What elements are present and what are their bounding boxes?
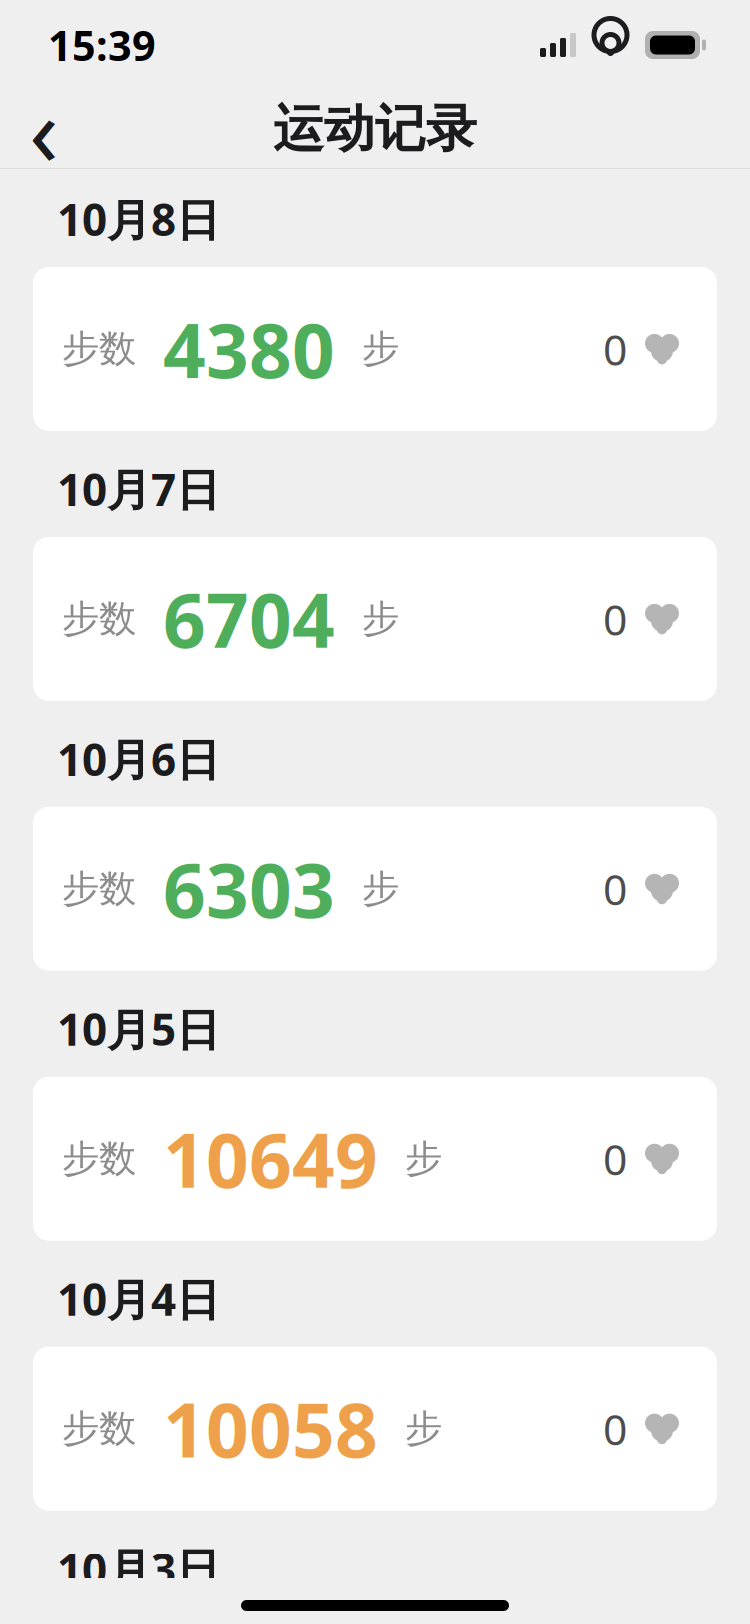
button[interactable]: 步数 (33, 1077, 717, 1241)
button[interactable]: 步数 (33, 807, 717, 971)
staticText: 0 (603, 1130, 627, 1187)
staticText: 运动记录 (273, 97, 477, 161)
staticText: 0 (603, 321, 627, 377)
staticText: 10058 (163, 1378, 378, 1479)
staticText: 步 (362, 326, 399, 372)
staticText: 4380 (163, 298, 335, 400)
button[interactable]: 返回 (4, 90, 84, 168)
staticText: 步数 (62, 866, 136, 912)
button[interactable]: 步数 (33, 267, 717, 431)
staticText: 10月4日 (57, 1269, 220, 1329)
staticText: 0 (603, 860, 627, 917)
button[interactable]: 步数 (33, 537, 717, 701)
staticText: 10月6日 (57, 729, 220, 789)
staticText: 步 (362, 866, 399, 912)
staticText: 步 (362, 596, 399, 642)
staticText: 0 (603, 1400, 627, 1457)
staticText: 步 (405, 1136, 442, 1182)
staticText: 步数 (62, 1136, 136, 1182)
staticText: 步 (405, 1406, 442, 1452)
staticText: 15:39 (48, 17, 156, 73)
staticText: 6704 (163, 568, 335, 670)
staticText: 6303 (163, 838, 335, 940)
button[interactable]: 步数 (33, 1347, 717, 1511)
staticText: 10月3日 (57, 1539, 220, 1598)
staticText: 0 (603, 590, 627, 647)
staticText: 10月5日 (57, 999, 220, 1059)
staticText: 步数 (62, 1406, 136, 1452)
staticText: 10月7日 (57, 459, 220, 519)
staticText: 10649 (163, 1108, 378, 1210)
staticText: 步数 (62, 596, 136, 642)
staticText: 10月8日 (57, 189, 220, 249)
staticText: 步数 (62, 326, 136, 372)
staticText: ‹ (29, 65, 59, 193)
